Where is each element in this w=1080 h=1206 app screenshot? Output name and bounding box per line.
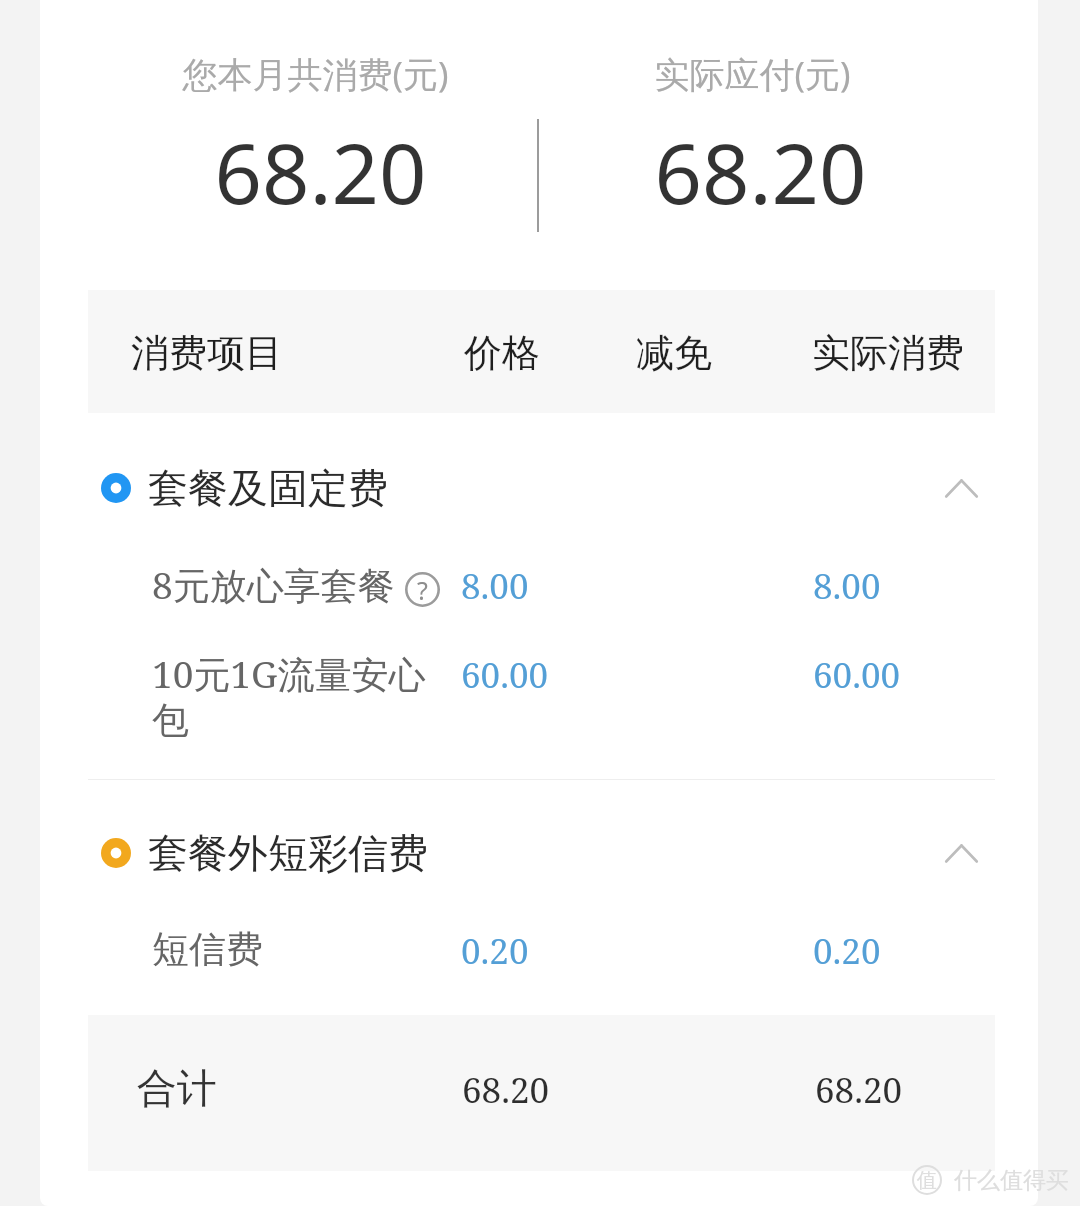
staticText: 0.20 [813,927,881,975]
other: More information [405,572,440,607]
button[interactable]: 套餐及固定费 [40,440,1038,536]
staticText: 您本月共消费(元) [182,50,449,98]
staticText: 包 [152,697,189,744]
staticText: 8.00 [461,562,529,610]
staticText: 套餐外短彩信费 [148,828,428,878]
staticText: 实际消费 [812,329,964,377]
staticText: 减免 [636,329,712,377]
button[interactable]: 10元1G流量安心 [40,630,1038,763]
staticText: 68.20 [462,1066,550,1114]
staticText: 短信费 [152,926,263,973]
staticText: ? [417,573,428,607]
staticText: 68.20 [815,1066,903,1114]
staticText: 60.00 [461,651,549,699]
staticText: 68.20 [654,115,867,228]
staticText: 实际应付(元) [654,50,851,98]
staticText: 什么值得买 [954,1166,1069,1195]
other: Collapse section [926,453,996,523]
staticText: 68.20 [214,115,427,228]
staticText: 10元1G流量安心 [152,648,426,699]
staticText: 合计 [137,1063,217,1113]
staticText: 值 [917,1168,937,1193]
staticText: 60.00 [813,651,901,699]
other: Collapse section [926,818,996,888]
button[interactable]: 短信费 [40,906,1038,992]
staticText: 0.20 [461,927,529,975]
button[interactable]: 套餐外短彩信费 [40,805,1038,901]
staticText: 价格 [464,329,540,377]
button[interactable]: 8元放心享套餐 [40,541,1038,627]
staticText: 8.00 [813,562,881,610]
staticText: 套餐及固定费 [148,463,388,513]
staticText: 消费项目 [131,329,283,377]
staticText: 8元放心享套餐 [152,559,395,610]
